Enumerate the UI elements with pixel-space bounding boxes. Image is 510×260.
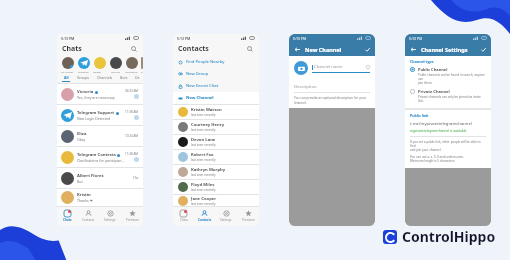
button[interactable]: Rob xyxy=(141,57,143,73)
button[interactable]: Private Channel xyxy=(410,89,486,103)
button[interactable]: Done xyxy=(363,45,371,53)
button[interactable]: Channels xyxy=(97,75,113,81)
button[interactable]: Devon Lane xyxy=(173,135,259,149)
button[interactable]: Chats xyxy=(57,206,78,226)
button[interactable]: Telegram xyxy=(77,57,90,73)
button[interactable]: Premium xyxy=(121,206,143,226)
staticText: Okay xyxy=(77,137,86,142)
button[interactable]: Design Stuff xyxy=(93,57,106,73)
staticText: New Secret Chat xyxy=(186,83,219,89)
staticText: Kathryn Murphy xyxy=(191,167,226,173)
staticText: Homeland xyxy=(125,70,138,73)
button[interactable]: Kathryn Murphy xyxy=(173,165,259,179)
button[interactable]: Floyd Miles xyxy=(173,180,259,194)
staticText: Eliza xyxy=(77,131,87,137)
button[interactable]: Back xyxy=(293,45,301,53)
button[interactable]: Premium xyxy=(237,206,259,226)
staticText: Public link xyxy=(410,113,429,118)
staticText: 10:24 AM xyxy=(125,134,139,138)
button[interactable]: Back xyxy=(409,45,417,53)
staticText: De xyxy=(135,75,140,80)
staticText: Contacts xyxy=(82,218,95,222)
staticText: last seen recently xyxy=(191,202,216,206)
staticText: Kristin xyxy=(77,192,91,198)
staticText: Contacts xyxy=(198,218,212,222)
button[interactable]: Contacts xyxy=(194,206,215,226)
button[interactable]: Groups xyxy=(77,75,90,81)
staticText: Chats xyxy=(63,218,72,222)
button[interactable]: Chats xyxy=(173,206,194,226)
staticText: ControlHippo xyxy=(402,227,496,246)
staticText: 5:13 PM xyxy=(61,36,75,41)
staticText: 5:13 PM xyxy=(409,36,423,41)
button[interactable]: Settings xyxy=(215,206,237,226)
staticText: Thu xyxy=(133,176,139,180)
staticText: Thanks ❤ xyxy=(77,198,93,203)
button[interactable]: De xyxy=(135,75,140,81)
staticText: Design Stuff xyxy=(93,70,106,73)
staticText: Victoria xyxy=(111,70,120,73)
staticText: last seen recently xyxy=(191,128,216,132)
staticText: Description xyxy=(294,84,317,90)
staticText: Jane Cooper xyxy=(191,196,217,202)
button[interactable]: Search xyxy=(130,45,138,53)
staticText: You can provide an optional description … xyxy=(294,96,367,104)
staticText: Contacts xyxy=(178,44,209,54)
staticText: 5:13 PM xyxy=(177,36,191,41)
button[interactable]: All xyxy=(62,75,70,82)
staticText: New Group xyxy=(186,71,209,77)
staticText: Channel name xyxy=(314,64,343,70)
staticText: Public Channel xyxy=(418,67,448,72)
button[interactable]: Robert Fox xyxy=(173,150,259,164)
staticText: t.me/mypivatetelegramchannel xyxy=(410,121,472,127)
button[interactable]: Kristin xyxy=(57,189,143,206)
staticText: All xyxy=(64,75,69,80)
staticText: Telegram Contests xyxy=(77,152,116,158)
staticText: Channels xyxy=(97,75,113,80)
button[interactable]: Find People Nearby xyxy=(173,56,259,68)
staticText: If you set a public link, other people w… xyxy=(410,140,486,152)
staticText: mypivatetelegramchannel is available. xyxy=(410,129,468,133)
button[interactable]: Victoria xyxy=(109,57,122,73)
button[interactable]: Courtney Henry xyxy=(173,120,259,134)
staticText: Chats xyxy=(180,218,188,222)
staticText: last seen recently xyxy=(191,173,216,177)
button[interactable]: Eliza xyxy=(57,126,143,146)
staticText: Find People Nearby xyxy=(186,59,225,65)
staticText: Floyd Miles xyxy=(191,182,215,188)
button[interactable]: Contacts xyxy=(78,206,99,226)
button[interactable]: Albert Flores xyxy=(57,168,143,188)
button[interactable]: Bots xyxy=(120,75,128,81)
staticText: My Stories xyxy=(61,70,74,73)
button[interactable]: New Secret Chat xyxy=(173,80,259,92)
button[interactable]: Kristin Watson xyxy=(173,105,259,119)
staticText: Albert Flores xyxy=(77,173,104,179)
staticText: 11:38 AM xyxy=(125,152,139,156)
staticText: Courtney Henry xyxy=(191,122,225,128)
button[interactable]: New Group xyxy=(173,68,259,80)
button[interactable]: Victoria xyxy=(57,84,143,104)
button[interactable]: Settings xyxy=(99,206,121,226)
button[interactable]: Homeland xyxy=(125,57,138,73)
button[interactable]: Telegram Support xyxy=(57,105,143,125)
staticText: Premium xyxy=(126,218,139,222)
button[interactable]: New Channel xyxy=(173,92,259,104)
staticText: Groups xyxy=(77,75,90,80)
staticText: Private channels can only be joined via … xyxy=(418,95,486,103)
button[interactable]: Jane Cooper xyxy=(173,195,259,206)
staticText: But xyxy=(77,179,83,184)
button[interactable]: My Stories xyxy=(61,57,74,73)
staticText: Premium xyxy=(242,218,255,222)
staticText: Bots xyxy=(120,75,128,80)
staticText: Clarifications for participants of.. xyxy=(77,158,125,163)
button[interactable]: Search xyxy=(246,45,254,53)
staticText: Settings xyxy=(220,218,232,222)
button[interactable]: Public Channel xyxy=(410,67,486,85)
button[interactable]: Telegram Contests xyxy=(57,147,143,167)
staticText: Channel type xyxy=(410,59,434,64)
staticText: Private Channel xyxy=(418,89,450,94)
staticText: Victoria xyxy=(77,89,94,95)
button[interactable]: Done xyxy=(479,45,487,53)
staticText: You can use a–z, 0–9 and underscores. Mi… xyxy=(410,155,464,163)
staticText: 5:13 PM xyxy=(293,36,307,41)
